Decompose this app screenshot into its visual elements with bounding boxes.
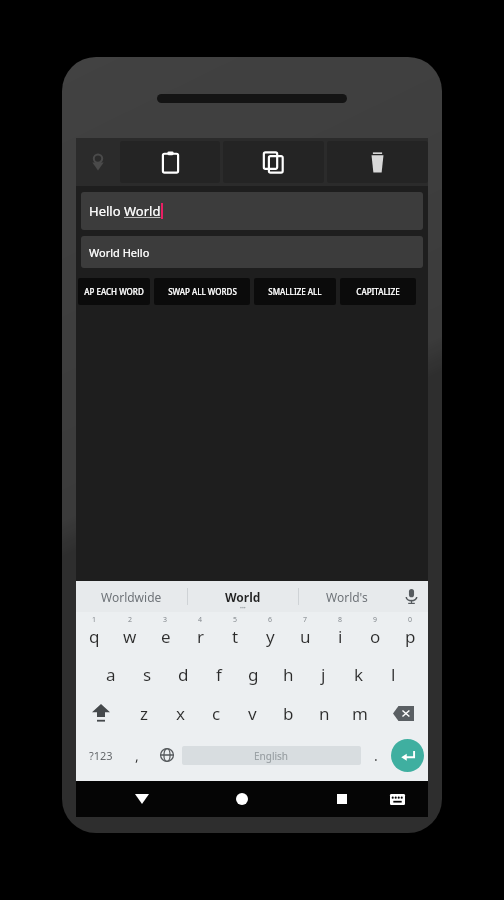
staticText: 9 [373, 615, 378, 625]
button[interactable]: s [129, 659, 165, 689]
staticText: , [135, 746, 139, 765]
button[interactable]: g [236, 659, 271, 689]
staticText: l [391, 663, 396, 686]
button[interactable]: 5 [218, 615, 253, 652]
button[interactable]: Recents [324, 781, 360, 817]
staticText: t [232, 625, 239, 648]
staticText: 2 [128, 615, 133, 625]
button[interactable]: Paste [120, 141, 220, 183]
button[interactable]: Home [224, 781, 260, 817]
staticText: Hello [89, 202, 124, 220]
button[interactable]: l [376, 659, 411, 689]
staticText: u [300, 625, 311, 648]
button[interactable]: Worldwide [76, 581, 187, 612]
button[interactable]: 3 [148, 615, 183, 652]
staticText: English [254, 749, 289, 763]
button[interactable]: AP EACH WORD [78, 278, 150, 305]
staticText: o [370, 625, 381, 648]
staticText: SMALLIZE ALL [268, 286, 322, 297]
button[interactable]: CAPITALIZE [340, 278, 416, 305]
button[interactable]: 1 [76, 615, 112, 652]
button[interactable]: . [361, 736, 391, 774]
staticText: j [321, 663, 326, 686]
button[interactable]: 4 [183, 615, 218, 652]
button[interactable]: Shift [76, 696, 126, 730]
button[interactable]: ?123 [80, 736, 122, 774]
staticText: 4 [198, 615, 203, 625]
staticText: 3 [163, 615, 168, 625]
button[interactable]: , [122, 736, 152, 774]
staticText: s [143, 663, 152, 686]
button[interactable]: h [271, 659, 306, 689]
staticText: 1 [92, 615, 97, 625]
staticText: x [176, 702, 185, 725]
staticText: SWAP ALL WORDS [168, 286, 237, 297]
staticText: g [248, 663, 259, 686]
button[interactable]: Enter [391, 739, 424, 772]
button[interactable]: SWAP ALL WORDS [154, 278, 250, 305]
staticText: AP EACH WORD [84, 286, 144, 297]
staticText: p [405, 625, 416, 648]
staticText: w [123, 625, 137, 648]
button[interactable]: World's [299, 581, 394, 612]
staticText: d [178, 663, 189, 686]
button[interactable]: 7 [288, 615, 323, 652]
button[interactable]: c [198, 696, 234, 730]
staticText: i [338, 625, 343, 648]
button[interactable]: Copy [223, 141, 324, 183]
button[interactable]: a [93, 659, 129, 689]
button[interactable]: 9 [358, 615, 393, 652]
staticText: 6 [268, 615, 273, 625]
button[interactable]: Change language [152, 736, 182, 774]
button[interactable]: 8 [323, 615, 358, 652]
staticText: b [283, 702, 294, 725]
button[interactable]: j [306, 659, 341, 689]
button[interactable]: Save [76, 138, 120, 186]
staticText: a [106, 663, 116, 686]
staticText: v [248, 702, 257, 725]
staticText: . [374, 746, 378, 765]
button[interactable]: World Hello [81, 236, 423, 268]
staticText: e [161, 625, 171, 648]
button[interactable]: b [270, 696, 306, 730]
staticText: z [140, 702, 148, 725]
staticText: World [124, 202, 161, 220]
button[interactable]: m [342, 696, 378, 730]
button[interactable]: Backspace [378, 696, 428, 730]
staticText: CAPITALIZE [356, 286, 400, 297]
button[interactable]: 2 [112, 615, 148, 652]
staticText: q [89, 625, 100, 648]
button[interactable]: English [182, 746, 361, 765]
staticText: k [354, 663, 364, 686]
staticText: n [319, 702, 330, 725]
button[interactable]: z [126, 696, 162, 730]
button[interactable]: Hide keyboard [124, 781, 160, 817]
staticText: World's [326, 589, 368, 605]
staticText: World [225, 589, 261, 605]
staticText: f [216, 663, 222, 686]
button[interactable]: v [234, 696, 270, 730]
staticText: r [197, 625, 205, 648]
button[interactable]: k [341, 659, 376, 689]
button[interactable]: 0 [393, 615, 428, 652]
button[interactable]: n [306, 696, 342, 730]
staticText: y [266, 625, 275, 648]
staticText: Worldwide [101, 589, 162, 605]
button[interactable]: f [201, 659, 236, 689]
staticText: 0 [408, 615, 413, 625]
button[interactable]: 6 [253, 615, 288, 652]
staticText: m [352, 702, 368, 725]
staticText: h [283, 663, 294, 686]
staticText: ••• [240, 605, 246, 612]
button[interactable]: d [165, 659, 201, 689]
button[interactable]: World [188, 581, 298, 612]
button[interactable]: SMALLIZE ALL [254, 278, 336, 305]
staticText: 8 [338, 615, 343, 625]
button[interactable]: Hello [81, 192, 423, 230]
button[interactable]: Switch keyboard [379, 781, 415, 817]
staticText: ?123 [89, 748, 113, 763]
button[interactable]: x [162, 696, 198, 730]
button[interactable]: Delete [327, 141, 428, 183]
staticText: 5 [233, 615, 238, 625]
button[interactable]: Voice input [394, 581, 428, 612]
